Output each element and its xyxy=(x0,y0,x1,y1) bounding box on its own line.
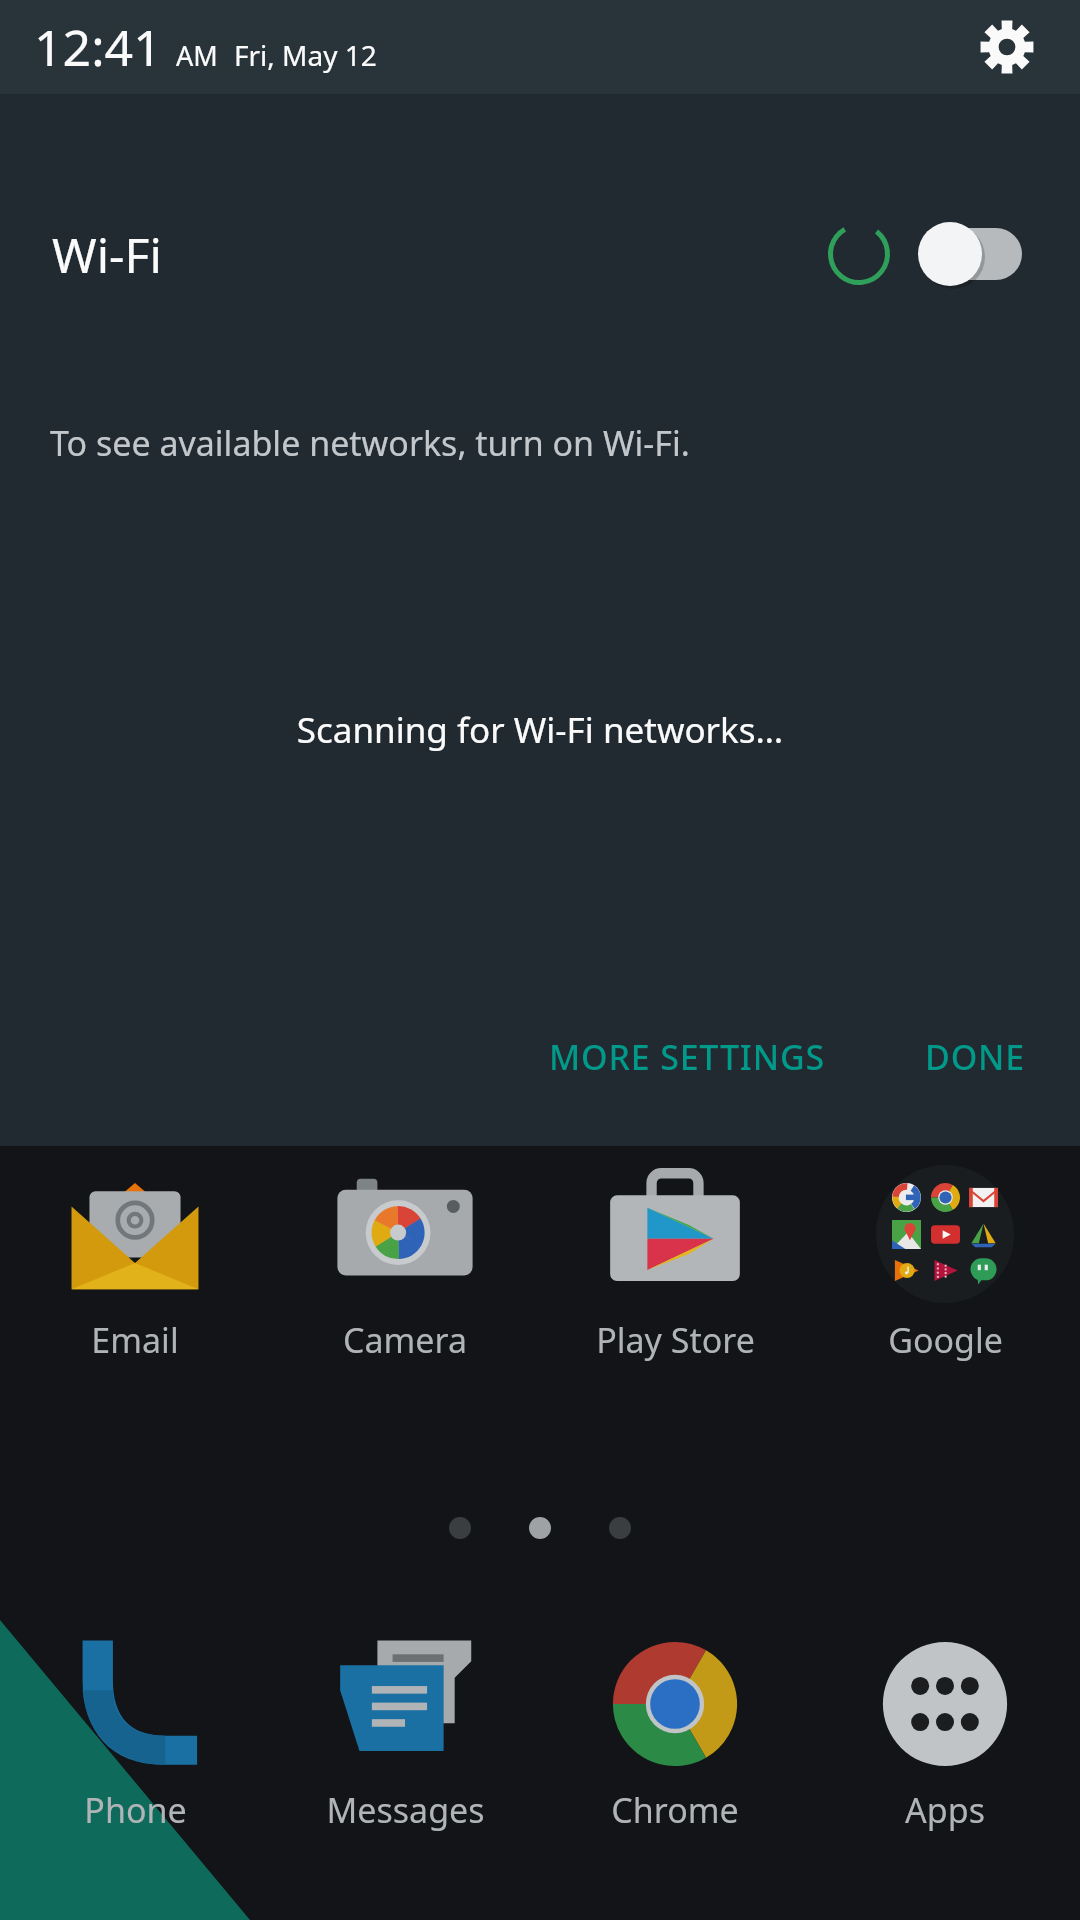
button[interactable]: Google xyxy=(810,1165,1080,1363)
staticText: To see available networks, turn on Wi-Fi… xyxy=(50,420,690,466)
button[interactable]: Camera xyxy=(270,1165,540,1363)
staticText: Messages xyxy=(326,1787,485,1833)
staticText: Wi-Fi xyxy=(52,222,162,287)
staticText: DONE xyxy=(925,1034,1026,1080)
staticText: 12:41 xyxy=(34,13,162,81)
staticText: AM xyxy=(176,37,218,74)
staticText: Fri, May 12 xyxy=(234,36,377,74)
button[interactable]: Chrome xyxy=(540,1635,810,1833)
button[interactable]: DONE xyxy=(901,1018,1050,1096)
staticText: Camera xyxy=(343,1317,467,1363)
staticText: Play Store xyxy=(596,1317,755,1363)
button[interactable]: Phone xyxy=(0,1635,270,1833)
staticText: Scanning for Wi-Fi networks… xyxy=(0,706,1080,754)
staticText: Chrome xyxy=(611,1787,739,1833)
staticText: Google xyxy=(888,1317,1003,1363)
staticText: Email xyxy=(91,1317,179,1363)
staticText: MORE SETTINGS xyxy=(549,1034,825,1080)
button[interactable]: Email xyxy=(0,1165,270,1363)
button[interactable]: Apps xyxy=(810,1635,1080,1833)
button[interactable]: Wi-Fi switch, off xyxy=(918,222,1022,286)
button[interactable]: Messages xyxy=(270,1635,540,1833)
button[interactable]: Settings xyxy=(972,12,1042,82)
button[interactable]: Play Store xyxy=(540,1165,810,1363)
button[interactable]: MORE SETTINGS xyxy=(525,1018,849,1096)
staticText: Phone xyxy=(84,1787,187,1833)
staticText: Apps xyxy=(905,1787,985,1833)
